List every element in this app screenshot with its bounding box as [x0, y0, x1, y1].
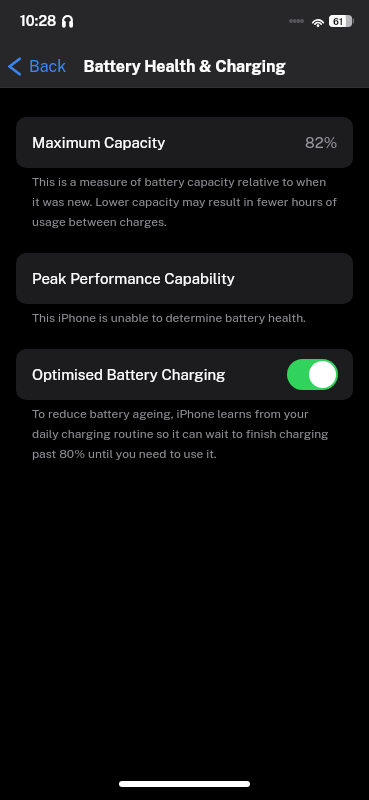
- staticText: Back: [29, 57, 67, 76]
- staticText: 10:28: [20, 13, 57, 29]
- staticText: Peak Performance Capability: [32, 270, 235, 288]
- staticText: 61: [333, 16, 343, 27]
- button[interactable]: Optimised Battery Charging: [16, 349, 353, 400]
- button[interactable]: Peak Performance Capability: [16, 253, 353, 304]
- staticText: Optimised Battery Charging: [32, 366, 226, 384]
- staticText: Maximum Capacity: [32, 134, 166, 152]
- button[interactable]: Back: [8, 44, 67, 88]
- staticText: Battery Health & Charging: [83, 57, 286, 76]
- staticText: To reduce battery ageing, iPhone learns …: [32, 407, 329, 461]
- button[interactable]: Maximum Capacity: [16, 117, 353, 168]
- staticText: This is a measure of battery capacity re…: [32, 175, 337, 229]
- button[interactable]: Optimised Battery Charging, on: [287, 359, 338, 390]
- staticText: 82%: [305, 134, 338, 152]
- staticText: This iPhone is unable to determine batte…: [32, 311, 306, 325]
